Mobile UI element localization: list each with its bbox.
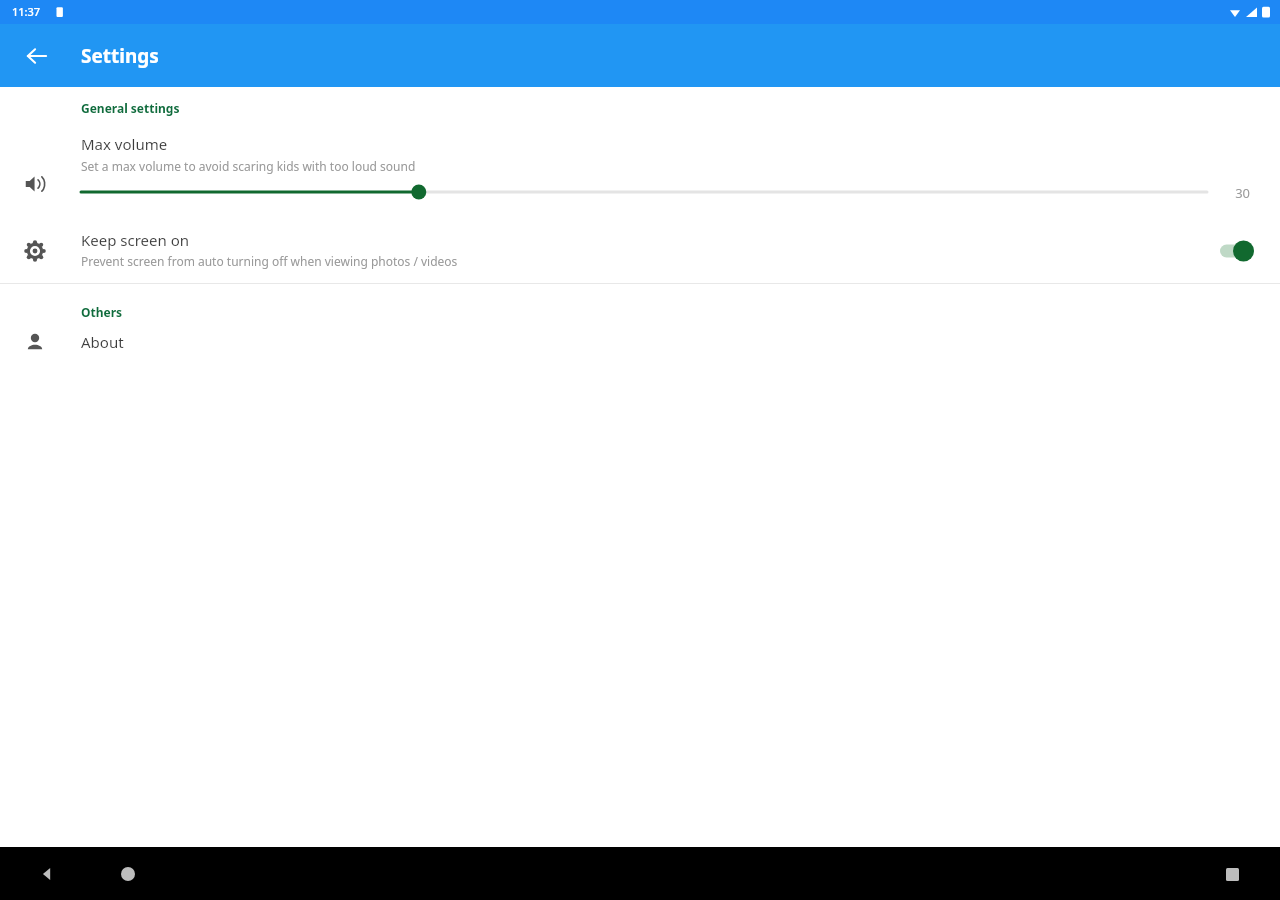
button[interactable]: Max volume bbox=[0, 116, 1280, 214]
button[interactable]: Recent apps bbox=[1212, 854, 1252, 894]
button[interactable] bbox=[1214, 234, 1262, 268]
staticText: 11:37 bbox=[12, 4, 41, 19]
staticText: 30 bbox=[1235, 184, 1250, 202]
button[interactable]: About bbox=[0, 320, 1280, 364]
staticText: Keep screen on bbox=[81, 230, 190, 250]
staticText: About bbox=[81, 332, 124, 352]
staticText: Prevent screen from auto turning off whe… bbox=[81, 253, 458, 269]
staticText: General settings bbox=[81, 100, 180, 116]
staticText: Set a max volume to avoid scaring kids w… bbox=[81, 158, 416, 174]
button[interactable] bbox=[74, 178, 1214, 206]
button[interactable]: Home bbox=[108, 854, 148, 894]
staticText: Max volume bbox=[81, 134, 168, 154]
button[interactable]: Back bbox=[13, 32, 61, 80]
staticText: Settings bbox=[81, 43, 159, 69]
button[interactable]: Keep screen on bbox=[0, 218, 1280, 283]
staticText: Others bbox=[81, 304, 123, 320]
button[interactable]: Back bbox=[28, 854, 68, 894]
